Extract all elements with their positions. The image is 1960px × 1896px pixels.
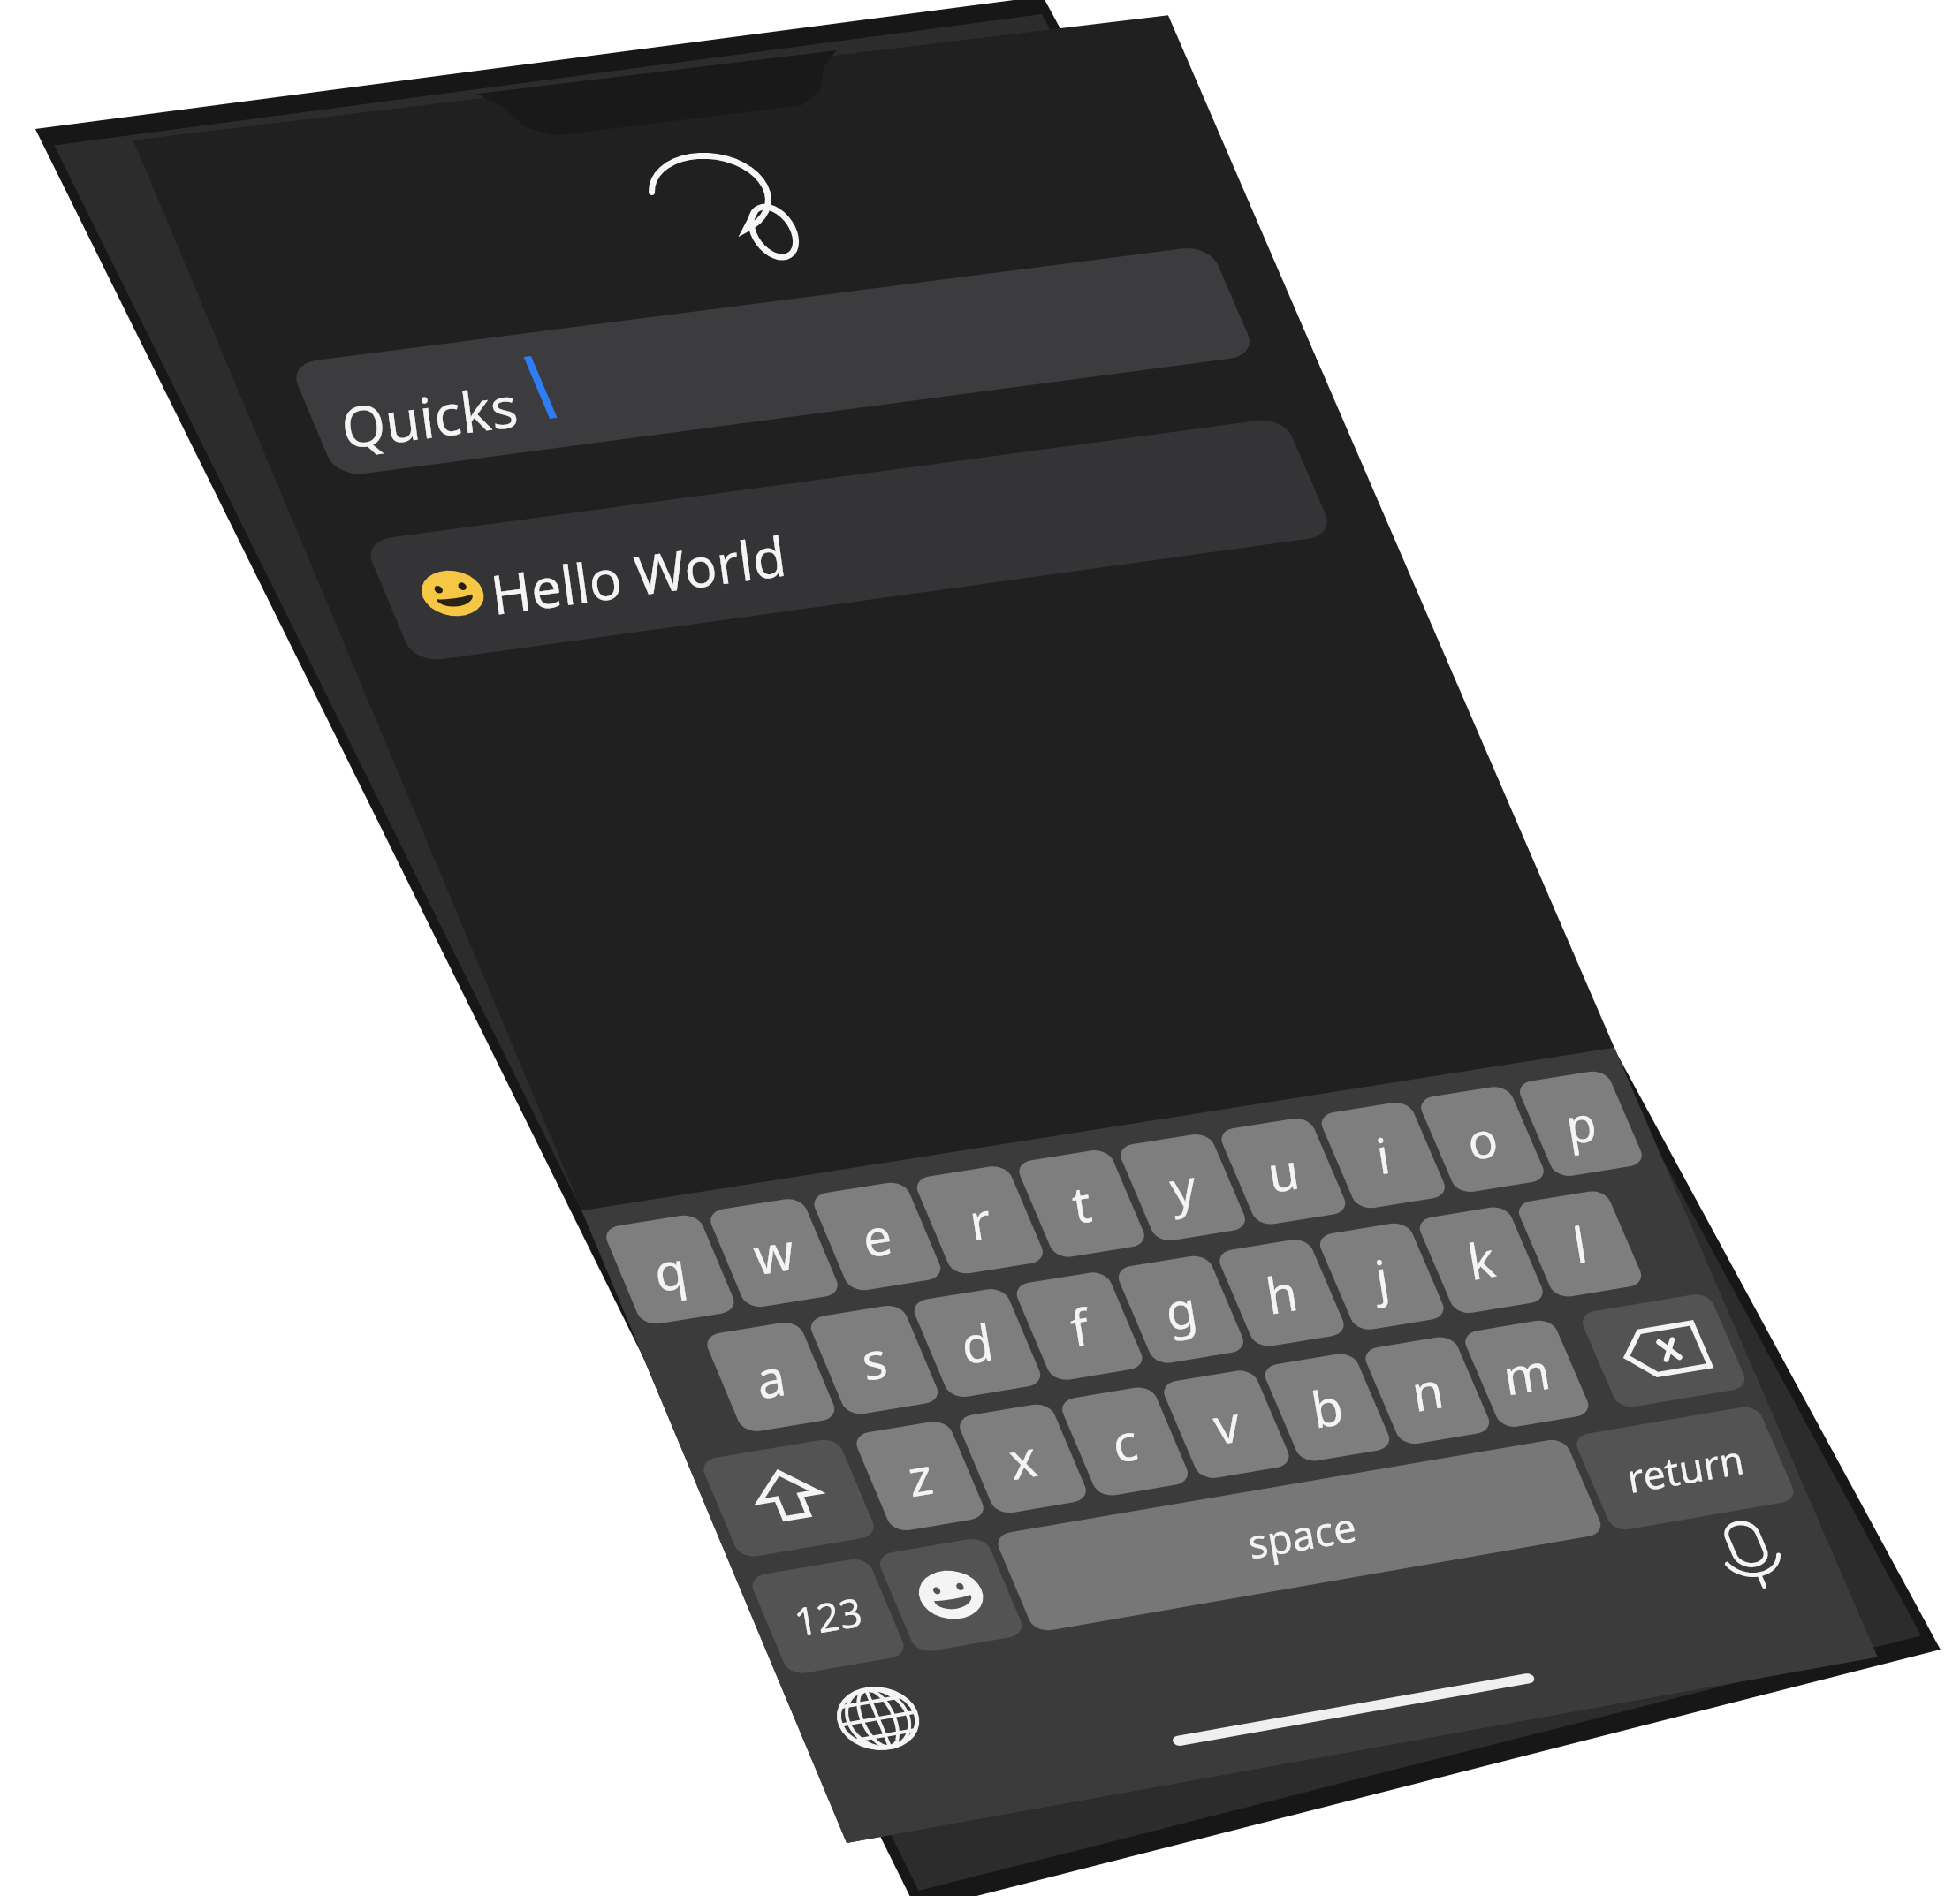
button[interactable]: Note editor with on-screen keyboard	[0, 0, 1960, 1896]
